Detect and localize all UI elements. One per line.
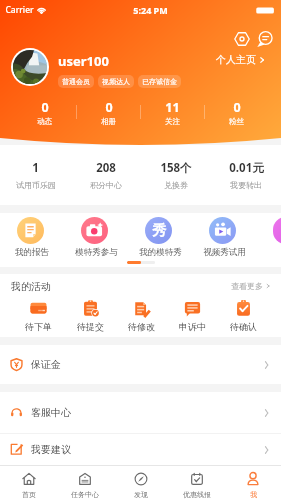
button[interactable]: 我: [225, 466, 281, 500]
staticText: 0.01元: [229, 160, 264, 176]
button[interactable]: 个人主页: [216, 53, 266, 66]
button[interactable]: 发现: [113, 466, 169, 500]
staticText: 0: [105, 99, 113, 116]
button[interactable]: Messages: [257, 31, 273, 47]
staticText: 试用币乐园: [16, 180, 56, 190]
button[interactable]: 0: [77, 98, 140, 126]
button[interactable]: 视频秀试用: [192, 213, 256, 267]
staticText: 我: [250, 490, 257, 499]
button[interactable]: 待确认: [218, 298, 269, 337]
staticText: user100: [58, 52, 109, 70]
button[interactable]: 158个: [141, 145, 211, 205]
button[interactable]: 我的报告: [0, 213, 64, 267]
staticText: 待修改: [128, 321, 155, 332]
staticText: 兑换券: [164, 180, 188, 190]
staticText: 208: [96, 160, 116, 176]
button[interactable]: 11: [141, 98, 204, 126]
button[interactable]: 申诉中: [167, 298, 218, 337]
staticText: 动态: [37, 117, 52, 126]
staticText: 首页: [22, 490, 36, 499]
staticText: 积分中心: [90, 180, 122, 190]
staticText: 我的模特秀: [139, 247, 182, 258]
staticText: 待提交: [77, 321, 104, 332]
staticText: 5:24 PM: [133, 4, 168, 16]
button[interactable]: 保证金: [0, 345, 281, 384]
staticText: 粉丝: [229, 117, 244, 126]
staticText: 158个: [160, 160, 192, 176]
button[interactable]: 优惠线报: [169, 466, 225, 500]
staticText: 保证金: [31, 358, 61, 371]
staticText: Carrier: [5, 4, 34, 16]
staticText: 11: [165, 99, 180, 116]
staticText: 秀: [152, 222, 166, 240]
staticText: 我要建议: [31, 443, 71, 456]
button[interactable]: 208: [71, 145, 141, 205]
staticText: 普通会员: [62, 77, 90, 86]
staticText: 相册: [101, 117, 116, 126]
button[interactable]: 待修改: [116, 298, 167, 337]
staticText: 视频秀试用: [203, 247, 246, 258]
staticText: 关注: [165, 117, 180, 126]
button[interactable]: 待下单: [12, 298, 64, 337]
staticText: 我要转出: [230, 180, 262, 190]
staticText: 优惠线报: [183, 490, 211, 499]
staticText: 查看更多: [231, 281, 263, 291]
staticText: 待确认: [230, 321, 257, 332]
staticText: 我的活动: [11, 280, 51, 293]
staticText: 发现: [134, 490, 148, 499]
button[interactable]: 客服中心: [0, 392, 281, 433]
button[interactable]: 1: [0, 145, 71, 205]
button[interactable]: 我要建议: [0, 434, 281, 465]
staticText: 视频达人: [102, 77, 130, 86]
button[interactable]: 0: [205, 98, 268, 126]
staticText: 1: [32, 160, 39, 176]
staticText: 个人主页: [216, 53, 256, 66]
staticText: 模特秀参与: [75, 247, 118, 258]
button[interactable]: 待提交: [64, 298, 116, 337]
staticText: 申诉中: [179, 321, 206, 332]
button[interactable]: Avatar: [13, 50, 47, 84]
button[interactable]: 首页: [0, 466, 57, 500]
button[interactable]: 0.01元: [211, 145, 281, 205]
staticText: 0: [41, 99, 49, 116]
staticText: 任务中心: [71, 490, 99, 499]
button[interactable]: 任务中心: [57, 466, 113, 500]
staticText: 已存诚信金: [142, 77, 177, 86]
button[interactable]: 0: [13, 98, 76, 126]
staticText: 0: [233, 99, 241, 116]
button[interactable]: Settings: [234, 31, 250, 47]
button[interactable]: 模特秀参与: [64, 213, 128, 267]
staticText: 待下单: [25, 321, 52, 332]
button[interactable]: 查看更多: [231, 281, 271, 291]
staticText: 客服中心: [31, 406, 71, 419]
staticText: 我的报告: [15, 247, 49, 258]
button[interactable]: 秀: [128, 213, 192, 267]
button[interactable]: [256, 213, 281, 267]
